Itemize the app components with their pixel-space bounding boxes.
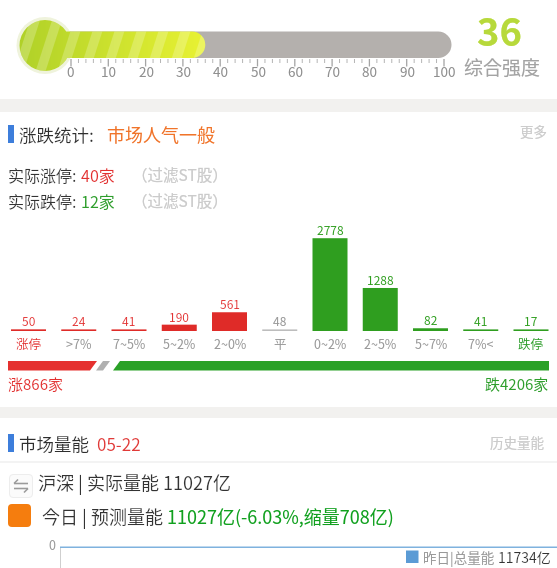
staticText: （过滤ST股） <box>132 163 228 185</box>
staticText: 2778 <box>317 221 344 238</box>
staticText: >7% <box>66 334 92 352</box>
button[interactable]: 沪深 | 实际量能 11027亿 <box>38 462 231 502</box>
staticText: 36 <box>477 2 522 57</box>
staticText: 更多 <box>520 121 547 141</box>
staticText: 跌停 <box>518 334 544 352</box>
staticText: 30 <box>176 61 191 81</box>
staticText: 12家 <box>81 189 115 212</box>
staticText: 17 <box>524 312 538 329</box>
staticText: 跌4206家 <box>485 373 549 395</box>
staticText: 11027亿(-6.03%,缩量708亿) <box>167 503 394 529</box>
staticText: 90 <box>400 61 415 81</box>
staticText: 40 <box>213 61 228 81</box>
staticText: 10 <box>101 61 116 81</box>
staticText: 涨跌统计: <box>19 122 94 147</box>
staticText: 实际涨停: <box>8 163 81 186</box>
staticText: 0~2% <box>314 334 347 352</box>
staticText: 0 <box>67 61 75 81</box>
staticText: 综合强度 <box>464 53 541 81</box>
button[interactable]: 涨跌统计: <box>19 114 215 154</box>
staticText: 历史量能 <box>490 432 544 452</box>
staticText: 50 <box>22 312 36 329</box>
staticText: 41 <box>122 312 136 329</box>
staticText: 60 <box>288 61 303 81</box>
staticText: 7~5% <box>113 334 146 352</box>
staticText: （过滤ST股） <box>132 189 228 211</box>
staticText: 41 <box>474 312 488 329</box>
staticText: 05-22 <box>97 431 141 456</box>
staticText: 涨866家 <box>8 373 63 395</box>
staticText: 40家 <box>81 163 115 186</box>
staticText: 82 <box>424 311 438 328</box>
button[interactable]: 历史量能 <box>485 430 549 453</box>
staticText: 11734亿 <box>498 547 551 567</box>
staticText: 5~2% <box>163 334 196 352</box>
staticText: 190 <box>169 308 189 325</box>
staticText: 100 <box>433 61 456 81</box>
staticText: 80 <box>362 61 377 81</box>
staticText: 48 <box>273 312 287 329</box>
staticText: 沪深 | 实际量能 11027亿 <box>38 469 231 495</box>
button[interactable]: 今日 | 预测量能 <box>42 496 394 536</box>
button[interactable]: 市场量能 <box>19 423 141 463</box>
staticText: 5~7% <box>415 334 448 352</box>
staticText: 实际跌停: <box>8 189 81 212</box>
staticText: 561 <box>220 295 240 312</box>
staticText: 20 <box>139 61 154 81</box>
staticText: 1288 <box>367 271 394 288</box>
staticText: 昨日|总量能 <box>423 547 498 567</box>
staticText: 70 <box>325 61 340 81</box>
staticText: 50 <box>251 61 266 81</box>
staticText: 7%< <box>468 334 494 352</box>
staticText: 市场人气一般 <box>107 121 215 147</box>
staticText: 2~5% <box>364 334 397 352</box>
staticText: 今日 | 预测量能 <box>42 503 167 529</box>
staticText: 市场量能 <box>19 431 89 456</box>
staticText: 0 <box>49 535 56 553</box>
staticText: 24 <box>72 312 86 329</box>
button[interactable]: 更多 <box>516 119 550 142</box>
staticText: 平 <box>274 334 287 352</box>
staticText: 涨停 <box>16 334 42 352</box>
staticText: 2~0% <box>214 334 247 352</box>
